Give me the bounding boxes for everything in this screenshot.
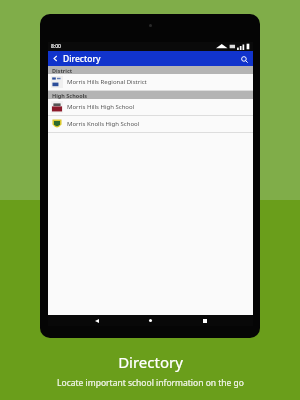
- button[interactable]: Back: [51, 54, 60, 63]
- button[interactable]: Home: [145, 315, 156, 326]
- staticText: Directory: [118, 352, 183, 372]
- button[interactable]: Morris Knolls High School: [48, 116, 253, 133]
- button[interactable]: Morris Hills Regional District: [48, 74, 253, 91]
- staticText: Morris Knolls High School: [67, 120, 140, 128]
- button[interactable]: Back: [91, 315, 102, 326]
- staticText: District: [52, 67, 73, 74]
- staticText: Directory: [63, 53, 101, 65]
- staticText: Morris Hills High School: [67, 103, 135, 111]
- button[interactable]: Recent apps: [199, 315, 210, 326]
- staticText: High Schools: [52, 92, 88, 99]
- staticText: Morris Hills Regional District: [67, 78, 147, 86]
- button[interactable]: Search: [238, 53, 250, 65]
- staticText: 8:00: [51, 43, 61, 50]
- staticText: Locate important school information on t…: [57, 377, 244, 389]
- button[interactable]: Morris Hills High School: [48, 99, 253, 116]
